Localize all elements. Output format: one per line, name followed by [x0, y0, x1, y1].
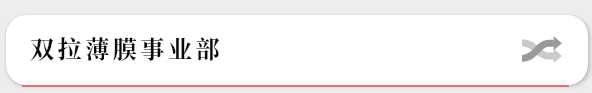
staticText: 双拉薄膜事业部: [30, 30, 224, 65]
button[interactable]: Shuffle: [510, 22, 566, 76]
button[interactable]: 双拉薄膜事业部: [6, 15, 588, 85]
